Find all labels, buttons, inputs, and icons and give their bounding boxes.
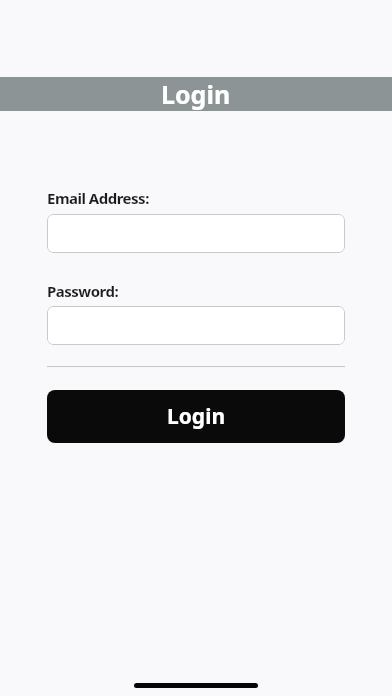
button[interactable] <box>47 306 345 345</box>
button[interactable] <box>47 214 345 253</box>
staticText: Password: <box>47 281 119 301</box>
staticText: Login <box>167 402 226 431</box>
staticText: Email Address: <box>47 188 149 208</box>
staticText: Login <box>161 77 231 111</box>
button[interactable]: Login <box>47 390 345 443</box>
